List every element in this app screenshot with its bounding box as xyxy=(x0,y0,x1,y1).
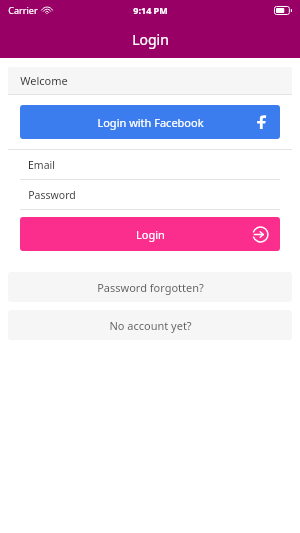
button[interactable]: Email xyxy=(8,150,292,179)
staticText: Login with Facebook xyxy=(97,115,204,130)
staticText: Email xyxy=(28,158,55,172)
staticText: No account yet? xyxy=(109,318,192,333)
staticText: Password xyxy=(28,188,76,202)
staticText: Carrier xyxy=(8,4,38,16)
button[interactable]: No account yet? xyxy=(8,310,292,340)
button[interactable]: Password xyxy=(8,180,292,209)
staticText: Welcome xyxy=(20,73,68,88)
button[interactable]: Login xyxy=(20,217,280,251)
other: Login xyxy=(252,226,269,243)
staticText: Login xyxy=(136,227,165,242)
staticText: Password forgotten? xyxy=(97,280,204,295)
staticText: 9:14 PM xyxy=(133,4,168,16)
button[interactable]: Password forgotten? xyxy=(8,272,292,302)
staticText: Login xyxy=(132,30,169,49)
button[interactable]: Login with Facebook xyxy=(20,105,280,139)
